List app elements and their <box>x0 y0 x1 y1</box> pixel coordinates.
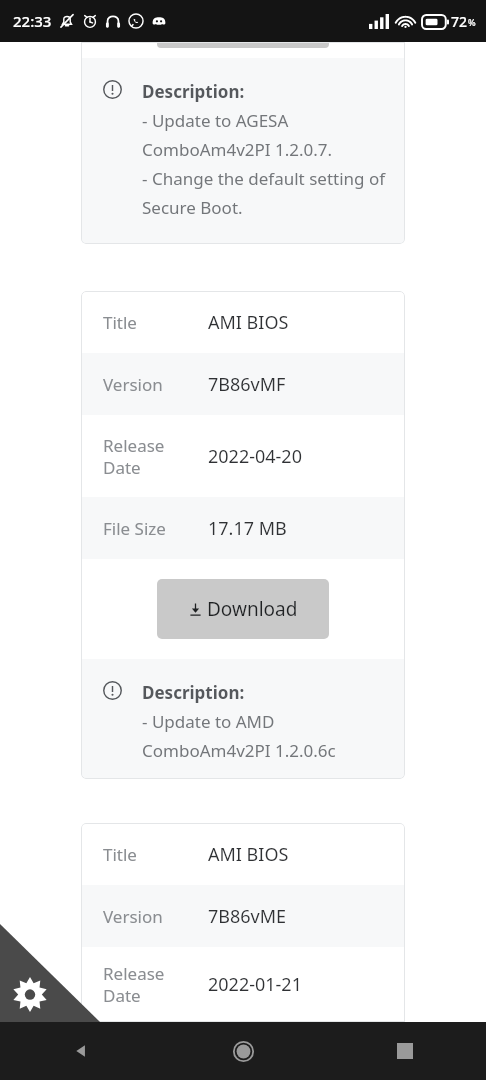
button[interactable]: Back <box>0 1022 162 1080</box>
staticText: Release Date <box>103 434 165 479</box>
button[interactable]: Version <box>81 353 405 415</box>
staticText: Description: <box>142 681 245 704</box>
button[interactable]: Version <box>81 885 405 947</box>
button[interactable]: Title <box>81 291 405 353</box>
staticText: - Update to AMD <box>142 710 275 733</box>
staticText: Version <box>103 373 163 396</box>
staticText: Release Date <box>103 962 165 1007</box>
staticText: ComboAm4v2PI 1.2.0.7. <box>142 138 333 161</box>
staticText: Download <box>207 596 298 622</box>
staticText: AMI BIOS <box>208 310 289 335</box>
staticText: 2022-04-20 <box>208 444 302 469</box>
staticText: Title <box>103 843 137 866</box>
staticText: Secure Boot. <box>142 196 243 219</box>
staticText: 22:33 <box>13 11 52 31</box>
button[interactable]: Download <box>157 579 329 639</box>
staticText: Title <box>103 311 137 334</box>
staticText: Description: <box>142 80 245 103</box>
staticText: 7B86vME <box>208 904 287 929</box>
staticText: Version <box>103 905 163 928</box>
staticText: % <box>468 16 476 28</box>
staticText: 7B86vMF <box>208 372 286 397</box>
staticText: ComboAm4v2PI 1.2.0.6c <box>142 739 336 762</box>
staticText: 17.17 MB <box>208 516 287 541</box>
staticText: - Update to AGESA <box>142 109 289 132</box>
staticText: - Change the default setting of <box>142 167 386 190</box>
button[interactable]: Home <box>162 1022 324 1080</box>
button[interactable]: Download <box>157 42 329 48</box>
staticText: 72 <box>451 12 468 31</box>
staticText: 2022-01-21 <box>208 972 302 997</box>
button[interactable]: Release Date <box>81 415 405 497</box>
staticText: AMI BIOS <box>208 842 289 867</box>
staticText: File Size <box>103 517 166 540</box>
button[interactable]: Release Date <box>81 947 405 1022</box>
button[interactable]: Recent apps <box>324 1022 486 1080</box>
button[interactable]: File Size <box>81 497 405 559</box>
button[interactable]: Title <box>81 823 405 885</box>
button[interactable]: Settings <box>0 924 100 1022</box>
